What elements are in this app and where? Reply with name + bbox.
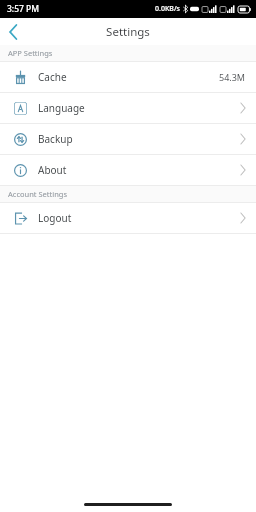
staticText: 0.0KB/s — [155, 4, 181, 14]
button[interactable]: Logout — [0, 203, 256, 233]
staticText: Cache — [38, 70, 67, 84]
staticText: Language — [38, 101, 85, 115]
staticText: APP Settings — [8, 48, 53, 58]
button[interactable]: Back — [0, 19, 26, 45]
staticText: Account Settings — [8, 189, 67, 199]
staticText: 54.3M — [219, 71, 246, 83]
button[interactable]: Language — [0, 93, 256, 123]
button[interactable]: About — [0, 155, 256, 185]
staticText: Settings — [106, 24, 150, 40]
staticText: 3:57 PM — [7, 3, 40, 15]
staticText: Logout — [38, 211, 72, 225]
button[interactable]: Cache — [0, 62, 256, 92]
staticText: About — [38, 163, 67, 177]
staticText: Backup — [38, 132, 73, 146]
button[interactable]: Backup — [0, 124, 256, 154]
